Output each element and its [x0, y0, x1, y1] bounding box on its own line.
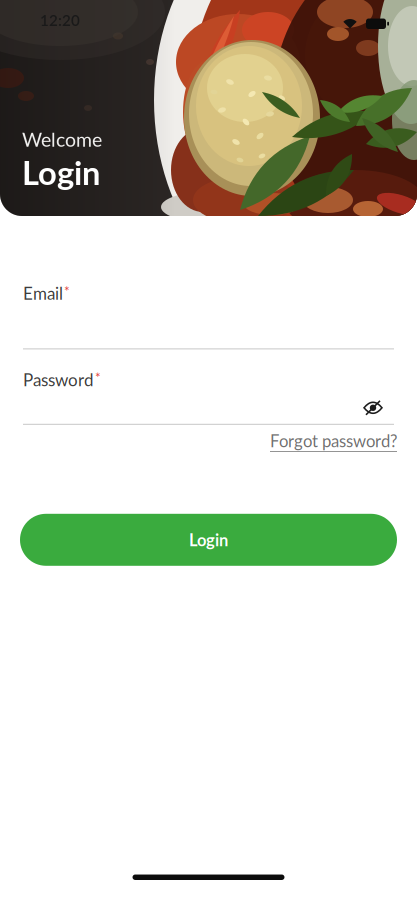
button[interactable]: Login: [20, 514, 397, 566]
button[interactable]: Email: [23, 303, 394, 349]
button[interactable]: Forgot password?: [270, 431, 397, 451]
staticText: *: [64, 283, 70, 299]
staticText: Login: [189, 530, 228, 550]
staticText: Welcome: [22, 127, 102, 151]
staticText: Forgot password?: [270, 431, 397, 451]
staticText: 12:20: [40, 11, 80, 29]
staticText: Login: [22, 153, 100, 192]
button[interactable]: Show password: [363, 401, 383, 415]
staticText: *: [95, 369, 101, 385]
button[interactable]: Password: [23, 415, 394, 425]
staticText: Password: [23, 369, 94, 390]
staticText: Email: [23, 283, 63, 303]
